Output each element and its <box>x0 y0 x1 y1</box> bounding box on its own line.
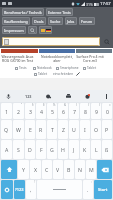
button[interactable]: P <box>102 120 112 139</box>
button[interactable]: Start <box>94 180 112 199</box>
button[interactable]: N <box>75 160 85 179</box>
button[interactable]: 2 <box>13 103 24 119</box>
button[interactable]: K <box>80 140 90 159</box>
button[interactable]: , <box>26 180 36 199</box>
staticText: B <box>67 166 71 173</box>
button[interactable]: J <box>69 140 79 159</box>
button[interactable]: Kaufberatung <box>2 17 30 25</box>
button[interactable]: M <box>86 160 96 179</box>
button[interactable]: Tablet <box>33 72 49 76</box>
button[interactable]: Einstellungen <box>1 180 13 199</box>
button[interactable]: Surface Pro 4 mit Core-m3 <box>76 49 112 63</box>
button[interactable]: Impressum <box>2 26 26 34</box>
button[interactable]: U <box>69 120 79 139</box>
button[interactable]: O <box>91 120 101 139</box>
button[interactable]: Suchen <box>102 37 111 46</box>
button[interactable]: Suche <box>28 26 37 34</box>
button[interactable]: 123 <box>24 92 33 101</box>
button[interactable]: A <box>1 140 12 159</box>
button[interactable]: C <box>42 160 52 179</box>
button[interactable]: Sticker <box>44 92 52 100</box>
button[interactable]: ?123 <box>14 180 25 199</box>
staticText: Forum <box>81 19 93 24</box>
staticText: N <box>78 166 82 173</box>
button[interactable]: Benchmarks / Technik <box>2 8 44 16</box>
button[interactable]: H <box>58 140 68 159</box>
button[interactable]: 9 <box>91 103 101 119</box>
button[interactable]: 8 <box>80 103 90 119</box>
staticText: Tests <box>19 66 27 70</box>
staticText: § <box>32 103 34 107</box>
button[interactable]: I <box>80 120 90 139</box>
button[interactable]: Umschalt <box>1 160 17 179</box>
button[interactable] <box>2 37 100 46</box>
staticText: Notebookkomplett, aber im Test war <box>39 54 75 63</box>
button[interactable]: 3 <box>25 103 35 119</box>
staticText: Suche <box>50 19 61 24</box>
button[interactable]: T <box>47 120 57 139</box>
button[interactable]: Tablet <box>82 66 98 70</box>
button[interactable]: L <box>91 140 101 159</box>
staticText: % <box>53 103 56 107</box>
button[interactable]: 0 <box>102 103 112 119</box>
button[interactable]: Mikrofon <box>4 92 12 100</box>
button[interactable]: Sprache <box>39 26 52 34</box>
button[interactable]: R <box>36 120 46 139</box>
button[interactable]: 6 <box>58 103 68 119</box>
button[interactable]: 7 <box>69 103 79 119</box>
button[interactable]: Notebook <box>32 66 53 70</box>
button[interactable]: Tests <box>14 66 28 70</box>
button[interactable]: Externe Tests <box>46 8 73 16</box>
staticText: ß <box>105 146 109 153</box>
staticText: V <box>56 166 60 173</box>
staticText: D <box>28 146 32 153</box>
button[interactable]: Z <box>58 120 68 139</box>
staticText: S <box>17 146 20 153</box>
button[interactable]: W <box>13 120 24 139</box>
button[interactable]: B <box>64 160 74 179</box>
button[interactable]: Deals <box>32 17 46 25</box>
staticText: Z <box>62 126 65 133</box>
staticText: ! <box>34 180 35 184</box>
button[interactable]: E <box>25 120 35 139</box>
button[interactable]: G <box>47 140 57 159</box>
button[interactable]: V <box>53 160 63 179</box>
staticText: L <box>95 146 98 153</box>
staticText: U <box>72 126 76 133</box>
button[interactable]: Einstellungen <box>83 92 91 100</box>
staticText: , <box>30 186 32 193</box>
button[interactable]: Löschen <box>97 160 112 179</box>
staticText: 8 <box>84 108 87 115</box>
staticText: einschränken <box>53 72 74 76</box>
staticText: / <box>76 103 78 107</box>
button[interactable]: S <box>13 140 24 159</box>
button[interactable]: F <box>36 140 46 159</box>
button[interactable]: Notebookkomplett, aber im Test war <box>39 49 75 63</box>
button[interactable]: D <box>25 140 35 159</box>
button[interactable]: 5 <box>47 103 57 119</box>
button[interactable]: 1 <box>1 103 12 119</box>
staticText: . <box>87 186 89 193</box>
button[interactable]: Jobs <box>65 17 77 25</box>
button[interactable]: Suche <box>48 17 63 25</box>
button[interactable]: X <box>30 160 41 179</box>
button[interactable]: Zwischenablage <box>64 92 72 100</box>
button[interactable]: 4 <box>36 103 46 119</box>
button[interactable]: . <box>83 180 93 199</box>
staticText: Jobs <box>67 19 75 24</box>
button[interactable]: Wassergewalt: Asus ROG GX700 im Test <box>1 49 38 63</box>
button[interactable]: Q <box>1 120 12 139</box>
staticText: A <box>5 146 9 153</box>
button[interactable]: Smartphone <box>55 66 80 70</box>
button[interactable]: Forum <box>79 17 95 25</box>
button[interactable]: Leertaste <box>37 180 82 199</box>
button[interactable]: ß <box>102 140 112 159</box>
button[interactable]: Mehr <box>103 93 109 99</box>
staticText: F <box>40 146 43 153</box>
staticText: Wassergewalt: Asus ROG GX700 im Test <box>1 54 34 63</box>
staticText: 17:57 <box>100 1 111 7</box>
staticText: 1 <box>5 108 8 115</box>
button[interactable]: Y <box>18 160 29 179</box>
staticText: O <box>94 126 99 133</box>
staticText: 31% <box>86 2 93 7</box>
